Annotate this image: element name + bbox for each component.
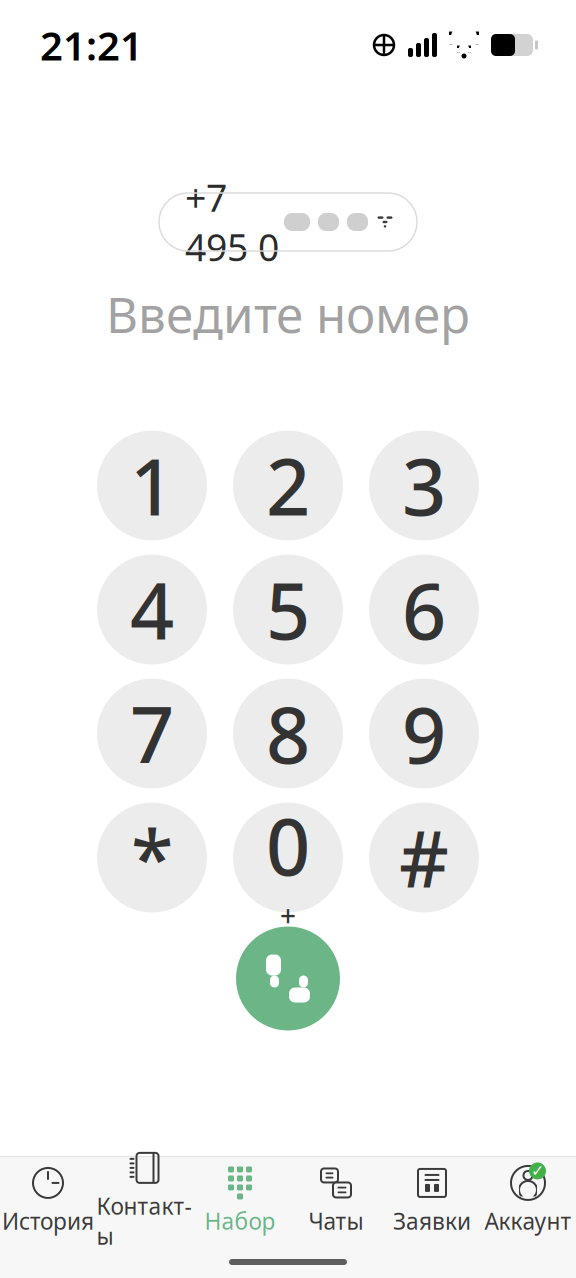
button[interactable]: Чаты: [288, 1168, 384, 1234]
button[interactable]: 0: [233, 802, 343, 912]
staticText: +7 495 0: [185, 172, 279, 272]
staticText: 21:21: [40, 18, 143, 71]
staticText: История: [2, 1206, 94, 1236]
staticText: 9: [402, 682, 446, 785]
staticText: 8: [266, 682, 310, 785]
staticText: 3: [402, 434, 446, 537]
staticText: ✓: [531, 1162, 544, 1180]
staticText: Контакты: [96, 1191, 191, 1251]
button[interactable]: Заявки: [384, 1168, 480, 1234]
button[interactable]: Контакты: [96, 1168, 192, 1234]
button[interactable]: +7 495 0: [159, 193, 417, 251]
staticText: Введите номер: [106, 281, 470, 346]
button[interactable]: 5: [233, 554, 343, 664]
button[interactable]: #: [369, 802, 479, 912]
staticText: 1: [130, 434, 174, 537]
button[interactable]: 3: [369, 430, 479, 540]
staticText: Заявки: [393, 1206, 471, 1236]
button[interactable]: Позвонить: [236, 926, 340, 1030]
button[interactable]: *: [97, 802, 207, 912]
staticText: 2: [266, 434, 310, 537]
staticText: *: [131, 806, 173, 909]
staticText: 4: [130, 558, 174, 661]
staticText: +: [280, 897, 296, 934]
staticText: #: [399, 806, 449, 909]
button[interactable]: 1: [97, 430, 207, 540]
button[interactable]: 2: [233, 430, 343, 540]
staticText: 0: [266, 794, 310, 897]
button[interactable]: 4: [97, 554, 207, 664]
button[interactable]: 9: [369, 678, 479, 788]
button[interactable]: Набор: [192, 1168, 288, 1234]
button[interactable]: 8: [233, 678, 343, 788]
staticText: Чаты: [308, 1206, 363, 1236]
staticText: 5: [266, 558, 310, 661]
staticText: Набор: [204, 1206, 275, 1236]
staticText: 6: [402, 558, 446, 661]
staticText: Аккаунт: [484, 1206, 571, 1236]
button[interactable]: История: [0, 1168, 96, 1234]
button[interactable]: 6: [369, 554, 479, 664]
button[interactable]: 7: [97, 678, 207, 788]
button[interactable]: ✓: [480, 1168, 576, 1234]
staticText: 7: [130, 682, 174, 785]
